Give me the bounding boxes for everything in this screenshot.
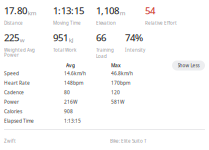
- staticText: 120: [111, 89, 120, 95]
- staticText: 908: [64, 108, 73, 114]
- staticText: 170bpm: [111, 79, 130, 86]
- staticText: Elevation: [96, 20, 116, 26]
- staticText: Power: [4, 98, 19, 105]
- staticText: Weighted Avg: [4, 47, 35, 53]
- staticText: Power: [4, 52, 19, 58]
- staticText: 1,108: [96, 4, 119, 17]
- staticText: Bike: Elite Suito T: [110, 138, 147, 144]
- staticText: 66: [96, 31, 106, 44]
- staticText: Speed: [4, 70, 19, 76]
- staticText: Intensity: [125, 47, 145, 53]
- staticText: Elapsed Time: [4, 117, 34, 124]
- staticText: kJ: [69, 36, 74, 44]
- staticText: 216W: [64, 98, 77, 105]
- staticText: 17.80: [4, 4, 27, 17]
- staticText: Total Work: [53, 47, 76, 53]
- button[interactable]: Show Less: [172, 60, 205, 70]
- staticText: Avg: [66, 62, 75, 69]
- staticText: 1:13:15: [64, 117, 81, 124]
- staticText: 581W: [111, 98, 124, 105]
- staticText: Zwift: [4, 138, 16, 144]
- staticText: 148bpm: [64, 79, 83, 86]
- staticText: Heart Rate: [4, 79, 30, 86]
- staticText: 54: [145, 4, 155, 17]
- staticText: 74%: [125, 31, 143, 44]
- staticText: 951: [53, 31, 68, 44]
- staticText: 46.8km/h: [111, 70, 133, 76]
- staticText: m: [120, 9, 126, 17]
- staticText: km: [28, 9, 37, 17]
- staticText: Cadence: [4, 89, 24, 95]
- staticText: 225: [4, 31, 19, 44]
- staticText: 80: [64, 89, 70, 95]
- staticText: Calories: [4, 108, 22, 114]
- staticText: Show Less: [177, 62, 199, 69]
- staticText: Max: [111, 62, 121, 69]
- staticText: Relative Effort: [145, 20, 177, 26]
- staticText: w: [20, 36, 25, 44]
- staticText: Training Load: [96, 47, 114, 59]
- staticText: 1:13:15: [53, 4, 84, 17]
- staticText: Distance: [4, 20, 23, 26]
- staticText: Moving Time: [53, 20, 81, 26]
- staticText: 14.6km/h: [64, 70, 86, 76]
